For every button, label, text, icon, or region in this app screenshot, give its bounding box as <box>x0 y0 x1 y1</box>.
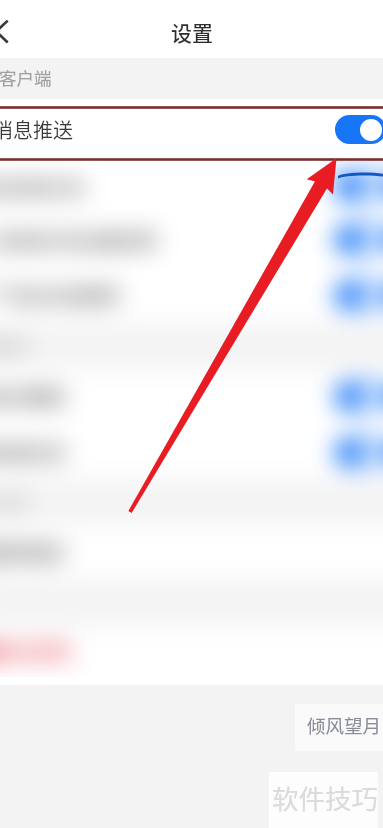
button[interactable]: 自动播放 <box>0 368 383 424</box>
staticText: 无痕浏览 <box>0 439 66 465</box>
button[interactable]: Back <box>0 9 24 53</box>
staticText: 客户端 <box>0 65 52 90</box>
button[interactable]: 夜间免打扰 <box>0 160 383 213</box>
staticText: 消息推送 <box>0 115 73 144</box>
button[interactable]: Toggle 个性化内容推荐 <box>335 281 383 310</box>
staticText: 退出登录 <box>0 637 73 665</box>
staticText: 个性化内容推荐 <box>0 282 120 308</box>
staticText: 消息免打扰设置说明 <box>0 227 156 253</box>
button[interactable]: 消息免打扰设置说明 <box>0 213 383 266</box>
button[interactable]: Toggle 自动播放 <box>335 382 383 411</box>
staticText: 清除缓存 <box>0 539 66 565</box>
button[interactable]: Toggle 无痕浏览 <box>335 438 383 467</box>
staticText: 夜间免打扰 <box>0 174 84 200</box>
button[interactable]: 清除缓存 <box>0 524 383 580</box>
button[interactable]: Toggle 消息推送 <box>335 115 383 144</box>
staticText: 倾风望月 <box>307 712 382 739</box>
button[interactable]: 无痕浏览 <box>0 424 383 480</box>
button[interactable]: Toggle 消息免打扰设置说明 <box>335 225 383 254</box>
staticText: 设置 <box>171 17 213 47</box>
staticText: 自动播放 <box>0 383 66 409</box>
button[interactable]: Toggle 夜间免打扰 <box>335 172 383 201</box>
staticText: 软件技巧 <box>272 778 378 816</box>
button[interactable]: 个性化内容推荐 <box>0 266 383 324</box>
button[interactable]: 消息推送 <box>0 99 383 160</box>
